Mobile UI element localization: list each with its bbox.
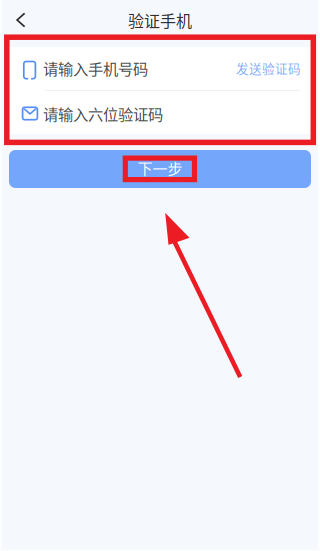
staticText: 验证手机 — [128, 8, 192, 32]
button[interactable]: 发送验证码 — [236, 59, 301, 77]
button[interactable]: Back — [0, 3, 38, 37]
staticText: 发送验证码 — [236, 59, 301, 77]
button[interactable]: 下一步 — [9, 150, 311, 188]
staticText: 下一步 — [137, 157, 182, 179]
staticText: 请输入六位验证码 — [43, 102, 163, 125]
staticText: 请输入手机号码 — [43, 57, 148, 79]
